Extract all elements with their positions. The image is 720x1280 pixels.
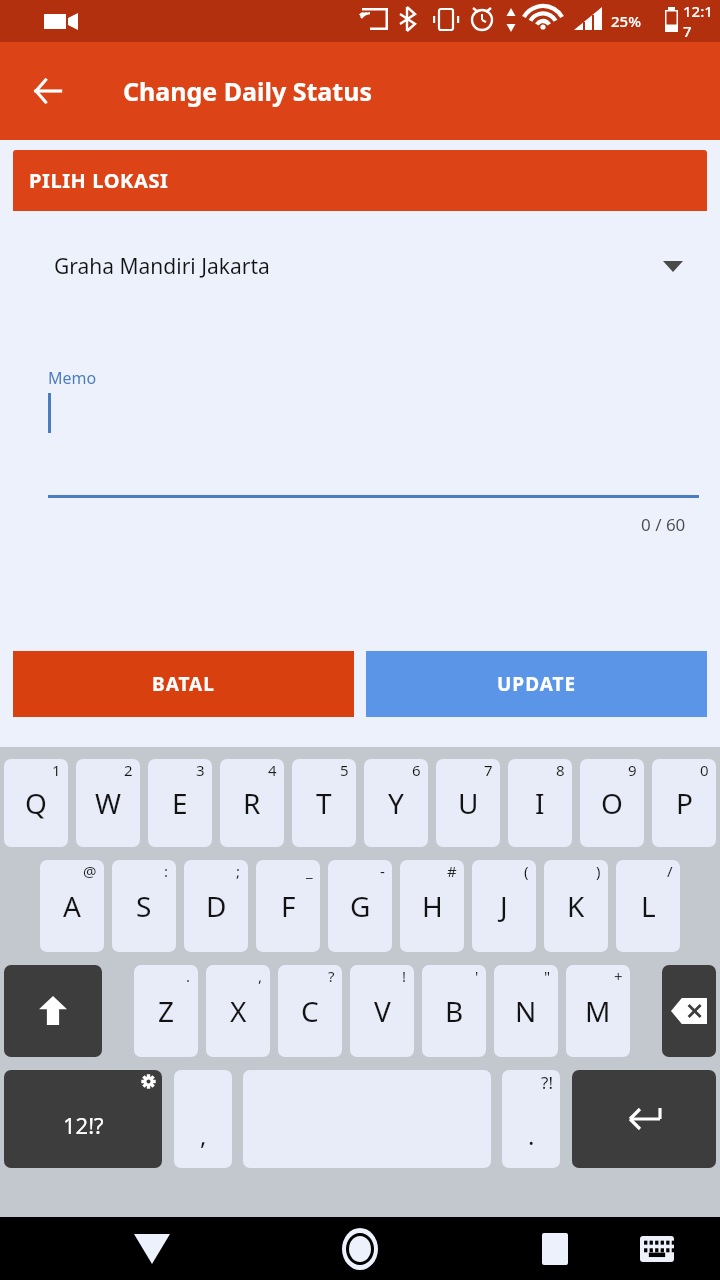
staticText: 25%	[611, 11, 641, 31]
staticText: T	[316, 784, 332, 822]
button[interactable]: '	[422, 965, 486, 1057]
button[interactable]: :	[112, 860, 176, 952]
button[interactable]: ;	[184, 860, 248, 952]
button[interactable]: !	[350, 965, 414, 1057]
button[interactable]: -	[328, 860, 392, 952]
staticText: 12!?	[63, 1110, 104, 1140]
staticText: 3	[196, 760, 205, 780]
button[interactable]: Hide keyboard	[112, 1217, 192, 1280]
staticText: 8	[556, 760, 565, 780]
staticText: Graha Mandiri Jakarta	[54, 252, 270, 281]
staticText: 9	[628, 760, 637, 780]
staticText: F	[281, 887, 296, 925]
staticText: PILIH LOKASI	[29, 167, 169, 194]
staticText: .	[186, 966, 191, 986]
staticText: /	[667, 861, 673, 881]
button[interactable]: "	[494, 965, 558, 1057]
staticText: A	[63, 887, 81, 925]
staticText: )	[596, 861, 601, 881]
button[interactable]: 12!?	[4, 1070, 162, 1168]
staticText: 12:17	[683, 1, 720, 41]
staticText: K	[567, 887, 585, 925]
button[interactable]: Graha Mandiri Jakarta	[13, 211, 707, 321]
button[interactable]: 7	[436, 759, 500, 847]
button[interactable]: Switch keyboard	[626, 1218, 688, 1280]
button[interactable]: (	[472, 860, 536, 952]
button[interactable]: #	[400, 860, 464, 952]
staticText: ?!	[541, 1071, 553, 1094]
staticText: G	[350, 887, 371, 925]
button[interactable]: 5	[292, 759, 356, 847]
staticText: "	[544, 966, 551, 986]
staticText: Change Daily Status	[123, 74, 372, 108]
staticText: 4	[268, 760, 277, 780]
staticText: B	[445, 992, 464, 1030]
button[interactable]: 1	[4, 759, 68, 847]
staticText: .	[528, 1119, 535, 1152]
staticText: ?	[328, 966, 335, 986]
button[interactable]: 6	[364, 759, 428, 847]
button[interactable]: Back	[20, 63, 76, 119]
button[interactable]: )	[544, 860, 608, 952]
button[interactable]: Backspace	[662, 965, 716, 1057]
staticText: _	[306, 861, 313, 881]
staticText: N	[515, 992, 537, 1030]
button[interactable]: 9	[580, 759, 644, 847]
staticText: Q	[25, 784, 47, 822]
staticText: C	[301, 992, 319, 1030]
staticText: 1	[52, 760, 61, 780]
staticText: +	[614, 966, 623, 986]
button[interactable]: +	[566, 965, 630, 1057]
staticText: O	[601, 784, 623, 822]
staticText: :	[164, 861, 169, 881]
button[interactable]: 3	[148, 759, 212, 847]
staticText: -	[380, 861, 385, 881]
staticText: !	[402, 966, 407, 986]
staticText: 2	[124, 760, 133, 780]
staticText: E	[172, 784, 188, 822]
staticText: X	[230, 992, 247, 1030]
button[interactable]: 2	[76, 759, 140, 847]
button[interactable]: _	[256, 860, 320, 952]
button[interactable]: /	[616, 860, 680, 952]
staticText: 0 / 60	[641, 513, 686, 536]
staticText: D	[206, 887, 227, 925]
button[interactable]: Memo	[13, 353, 707, 568]
button[interactable]: Shift	[4, 965, 102, 1057]
staticText: S	[136, 887, 152, 925]
staticText: ;	[236, 861, 241, 881]
staticText: 0	[700, 760, 709, 780]
button[interactable]: Recents	[520, 1217, 590, 1280]
staticText: U	[458, 784, 479, 822]
staticText: Memo	[48, 367, 97, 389]
staticText: L	[641, 887, 656, 925]
button[interactable]: 8	[508, 759, 572, 847]
button[interactable]: ?	[278, 965, 342, 1057]
staticText: M	[585, 992, 611, 1030]
button[interactable]: ,	[206, 965, 270, 1057]
staticText: ,	[258, 966, 263, 986]
button[interactable]: Home	[320, 1217, 400, 1280]
staticText: ,	[200, 1119, 207, 1152]
staticText: W	[95, 784, 122, 822]
staticText: (	[524, 861, 529, 881]
staticText: #	[447, 861, 457, 881]
button[interactable]: 0	[652, 759, 716, 847]
staticText: @	[83, 861, 97, 881]
button[interactable]: BATAL	[13, 651, 354, 717]
staticText: 7	[484, 760, 493, 780]
staticText: I	[535, 784, 545, 822]
button[interactable]: Enter	[572, 1070, 716, 1168]
button[interactable]: UPDATE	[366, 651, 707, 717]
staticText: J	[500, 887, 508, 925]
staticText: 6	[412, 760, 421, 780]
button[interactable]: ?!	[502, 1070, 560, 1168]
button[interactable]: 4	[220, 759, 284, 847]
button[interactable]: ,	[174, 1070, 232, 1168]
staticText: '	[475, 966, 479, 986]
staticText: UPDATE	[497, 671, 577, 697]
staticText: Y	[388, 784, 404, 822]
button[interactable]: @	[40, 860, 104, 952]
button[interactable]: .	[134, 965, 198, 1057]
